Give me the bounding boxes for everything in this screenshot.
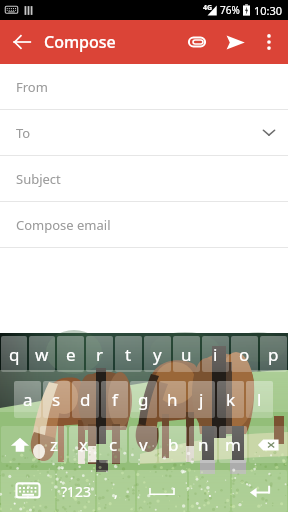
button[interactable]: s: [43, 381, 70, 418]
button[interactable]: e: [57, 336, 84, 372]
staticText: q: [9, 343, 20, 366]
button[interactable]: Space: [137, 470, 187, 512]
staticText: h: [167, 388, 178, 411]
button[interactable]: n: [189, 426, 217, 463]
button[interactable]: g: [130, 381, 157, 418]
button[interactable]: ,: [97, 470, 135, 512]
button[interactable]: .: [189, 470, 230, 512]
button[interactable]: a: [14, 381, 41, 418]
staticText: g: [138, 388, 149, 411]
staticText: Compose: [44, 31, 116, 53]
staticText: s: [52, 388, 61, 411]
button[interactable]: Attach file: [178, 23, 216, 61]
button[interactable]: h: [159, 381, 186, 418]
staticText: a: [23, 388, 33, 411]
button[interactable]: Send: [216, 23, 254, 61]
staticText: y: [153, 343, 162, 366]
button[interactable]: y: [144, 336, 171, 372]
button[interactable]: More options: [254, 27, 284, 57]
staticText: From: [16, 78, 48, 96]
button[interactable]: Enter: [232, 470, 287, 512]
button[interactable]: ?123: [57, 470, 95, 512]
button[interactable]: b: [159, 426, 187, 463]
button[interactable]: Shift: [1, 426, 38, 463]
staticText: 76%: [220, 3, 240, 17]
button[interactable]: Back: [0, 20, 44, 64]
button[interactable]: d: [72, 381, 99, 418]
staticText: i: [213, 343, 218, 366]
button[interactable]: f: [101, 381, 128, 418]
button[interactable]: Backspace: [249, 426, 287, 463]
staticText: r: [96, 343, 104, 366]
button[interactable]: x: [69, 426, 97, 463]
staticText: j: [199, 388, 204, 411]
staticText: f: [112, 388, 118, 411]
staticText: v: [139, 433, 148, 456]
staticText: 10:30: [254, 3, 283, 18]
staticText: d: [80, 388, 91, 411]
staticText: ?123: [61, 482, 92, 501]
button[interactable]: Hide keyboard: [1, 470, 55, 512]
staticText: 4G: [203, 3, 213, 13]
button[interactable]: z: [40, 426, 67, 463]
staticText: k: [226, 388, 236, 411]
button[interactable]: To: [0, 110, 288, 155]
button[interactable]: i: [202, 336, 229, 372]
button[interactable]: q: [1, 336, 27, 372]
staticText: p: [268, 343, 279, 366]
button[interactable]: v: [129, 426, 157, 463]
staticText: Subject: [16, 170, 61, 188]
button[interactable]: l: [246, 381, 273, 418]
button[interactable]: r: [86, 336, 113, 372]
staticText: c: [109, 433, 118, 456]
button[interactable]: Subject: [0, 156, 288, 201]
staticText: b: [168, 433, 179, 456]
staticText: t: [125, 343, 132, 366]
staticText: u: [181, 343, 192, 366]
staticText: l: [257, 388, 262, 411]
staticText: Compose email: [16, 216, 111, 234]
staticText: To: [16, 124, 31, 142]
button[interactable]: Compose email: [0, 202, 288, 247]
staticText: x: [79, 433, 88, 456]
button[interactable]: w: [29, 336, 55, 372]
button[interactable]: k: [217, 381, 244, 418]
button[interactable]: p: [260, 336, 287, 372]
staticText: e: [66, 343, 76, 366]
button[interactable]: j: [188, 381, 215, 418]
button[interactable]: u: [173, 336, 200, 372]
staticText: z: [50, 433, 58, 456]
staticText: n: [198, 433, 209, 456]
staticText: m: [225, 433, 241, 456]
button[interactable]: c: [99, 426, 127, 463]
button[interactable]: o: [231, 336, 258, 372]
button[interactable]: t: [115, 336, 142, 372]
staticText: ,: [114, 482, 118, 501]
staticText: .: [208, 482, 212, 501]
button[interactable]: m: [219, 426, 247, 463]
button[interactable]: From: [0, 64, 288, 109]
staticText: w: [35, 343, 49, 366]
staticText: o: [239, 343, 250, 366]
